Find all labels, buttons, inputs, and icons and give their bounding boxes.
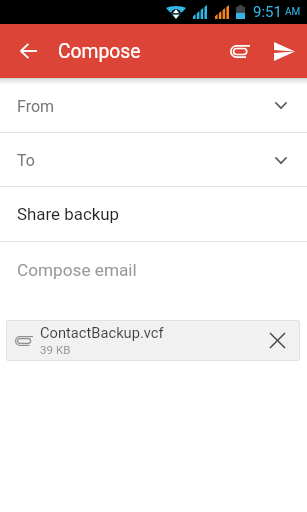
staticText: 9:51 xyxy=(253,3,282,21)
staticText: Share backup xyxy=(17,204,120,224)
button[interactable]: Navigate up xyxy=(0,24,54,78)
staticText: ContactBackup.vcf xyxy=(40,324,164,341)
button[interactable]: To xyxy=(0,133,307,186)
staticText: Compose xyxy=(58,40,141,63)
staticText: Compose email xyxy=(17,260,137,280)
button[interactable]: Share backup xyxy=(0,187,307,241)
button[interactable]: From xyxy=(0,78,307,132)
button[interactable]: Expand xyxy=(269,148,293,172)
staticText: From xyxy=(17,97,55,116)
staticText: AM xyxy=(285,6,301,18)
staticText: To xyxy=(17,151,35,170)
button[interactable]: Compose email xyxy=(0,242,307,320)
staticText: 39 KB xyxy=(40,343,71,357)
button[interactable]: ContactBackup.vcf xyxy=(6,320,300,361)
button[interactable]: Attach file xyxy=(220,24,264,78)
button[interactable]: Remove attachment xyxy=(257,320,298,361)
button[interactable]: Expand xyxy=(269,93,293,117)
button[interactable]: Send xyxy=(264,24,307,78)
